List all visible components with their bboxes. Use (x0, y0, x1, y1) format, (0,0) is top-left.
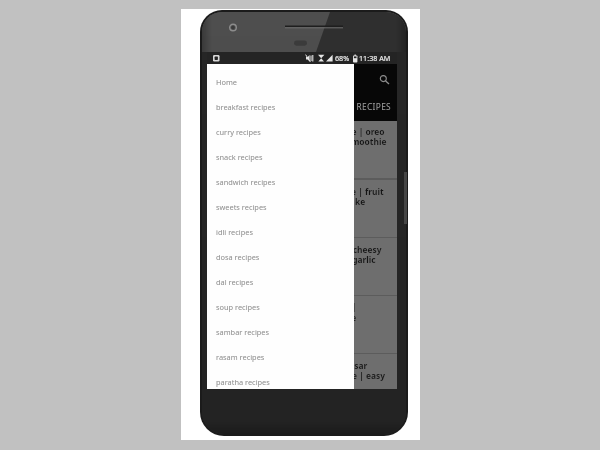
staticText: curry recipes (216, 127, 261, 137)
staticText: fruit shake recipe | fruit milk ke (231, 196, 366, 207)
button[interactable]: Y RECIPES (349, 101, 397, 112)
button[interactable]: sweets recipes (207, 194, 354, 219)
staticText: Y RECIPES (349, 101, 392, 112)
staticText: idli recipes (216, 227, 253, 237)
button[interactable]: sandwich recipes (207, 169, 354, 194)
button[interactable]: curry recipes (207, 119, 354, 144)
button[interactable]: Search (371, 70, 393, 92)
staticText: paratha recipes (216, 377, 270, 387)
staticText: 68% (335, 53, 350, 63)
staticText: breakfast recipes (216, 102, 276, 112)
button[interactable]: idli recipes (207, 219, 354, 244)
staticText: sambar recipe | easy south indian sar (210, 360, 368, 371)
button[interactable]: snack recipes (207, 144, 354, 169)
staticText: oreo milkshake recipe | oreo (264, 126, 385, 137)
button[interactable] (207, 296, 397, 353)
button[interactable]: sambar recipes (207, 319, 354, 344)
button[interactable]: paratha recipes (207, 369, 354, 389)
staticText: mixed fruit milkshake | fruit (264, 186, 384, 197)
staticText: dosa recipes (216, 252, 260, 262)
staticText: soup recipes (216, 302, 260, 312)
button[interactable]: dosa recipes (207, 244, 354, 269)
staticText: how to make oreo shake | oreo smoothie (214, 136, 387, 147)
button[interactable]: rasam recipes (207, 344, 354, 369)
button[interactable]: breakfast recipes (207, 94, 354, 119)
staticText: how to make sambar recipe | easy (241, 370, 386, 381)
button[interactable] (207, 120, 397, 178)
button[interactable] (207, 180, 397, 237)
staticText: sambar recipes (216, 327, 270, 337)
button[interactable]: soup recipes (207, 294, 354, 319)
staticText: 11:38 AM (359, 53, 391, 63)
staticText: garlic bread recipe | cheesy (266, 244, 382, 255)
staticText: aloo paratha recipe | potato paratha | (207, 301, 357, 312)
staticText: cheese garlic bread | cheese garlic (231, 254, 376, 265)
button[interactable] (207, 354, 397, 389)
staticText: dal recipes (216, 277, 254, 287)
staticText: rasam recipes (216, 352, 265, 362)
staticText: sandwich recipes (216, 177, 276, 187)
button[interactable]: Home (207, 69, 354, 94)
staticText: snack recipes (216, 152, 263, 162)
staticText: sweets recipes (216, 202, 267, 212)
staticText: Home (216, 77, 238, 87)
staticText: how to make aloo paratha | easy aloo e (207, 312, 357, 323)
button[interactable] (207, 238, 397, 295)
button[interactable]: dal recipes (207, 269, 354, 294)
